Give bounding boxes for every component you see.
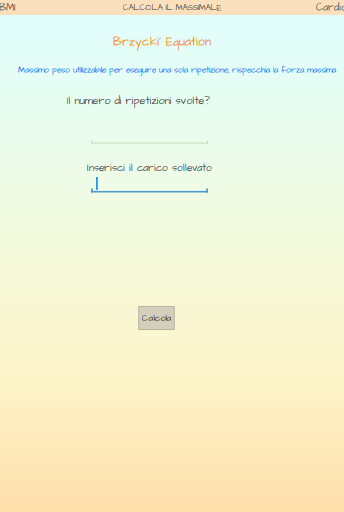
staticText: Cardio bbox=[316, 1, 344, 14]
staticText: Calcola bbox=[141, 311, 171, 324]
button[interactable]: BMI bbox=[0, 0, 41, 15]
staticText: Massimo peso utilizzabile per eseguire u… bbox=[18, 64, 336, 76]
button[interactable]: CALCOLA IL MASSIMALE bbox=[112, 0, 232, 15]
button[interactable]: Calcola bbox=[139, 306, 174, 329]
staticText: Inserisci il carico sollevato bbox=[87, 161, 212, 175]
button[interactable]: Cardio bbox=[316, 0, 344, 15]
button[interactable] bbox=[91, 168, 208, 192]
staticText: Brzycki' Equation bbox=[113, 34, 211, 50]
staticText: CALCOLA IL MASSIMALE bbox=[122, 2, 221, 13]
staticText: BMI bbox=[0, 1, 16, 14]
button[interactable] bbox=[91, 119, 208, 143]
staticText: Il numero di ripetizioni svolte? bbox=[66, 94, 209, 108]
